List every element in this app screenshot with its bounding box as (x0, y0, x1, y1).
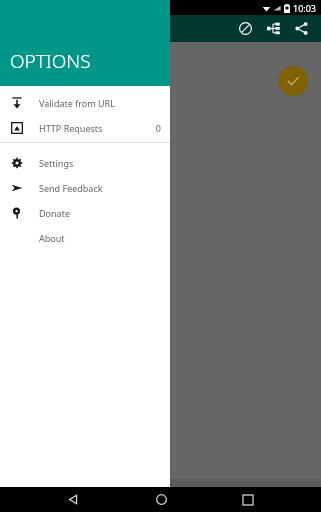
button[interactable]: Clear (231, 15, 259, 42)
button[interactable]: Home (146, 487, 176, 512)
button[interactable]: About (0, 225, 170, 250)
button[interactable]: HTTP Requests (0, 115, 170, 140)
staticText: Settings (39, 157, 74, 169)
staticText: Validate from URL (39, 97, 115, 109)
staticText: Donate (39, 207, 70, 219)
button[interactable]: Back (58, 487, 88, 512)
button[interactable]: Donate (0, 200, 170, 225)
button[interactable]: Send Feedback (0, 175, 170, 200)
button[interactable]: Settings (0, 150, 170, 175)
button[interactable]: Tree view (259, 15, 287, 42)
staticText: 10:03 (293, 2, 317, 14)
staticText: Send Feedback (39, 182, 103, 194)
button[interactable]: Validate (278, 66, 308, 96)
staticText: 0 (155, 122, 161, 134)
staticText: About (39, 232, 65, 244)
button[interactable]: Recent apps (233, 487, 263, 512)
button[interactable]: Share (287, 15, 315, 42)
staticText: HTTP Requests (39, 122, 103, 134)
button[interactable]: Validate from URL (0, 90, 170, 115)
staticText: OPTIONS (10, 48, 91, 74)
